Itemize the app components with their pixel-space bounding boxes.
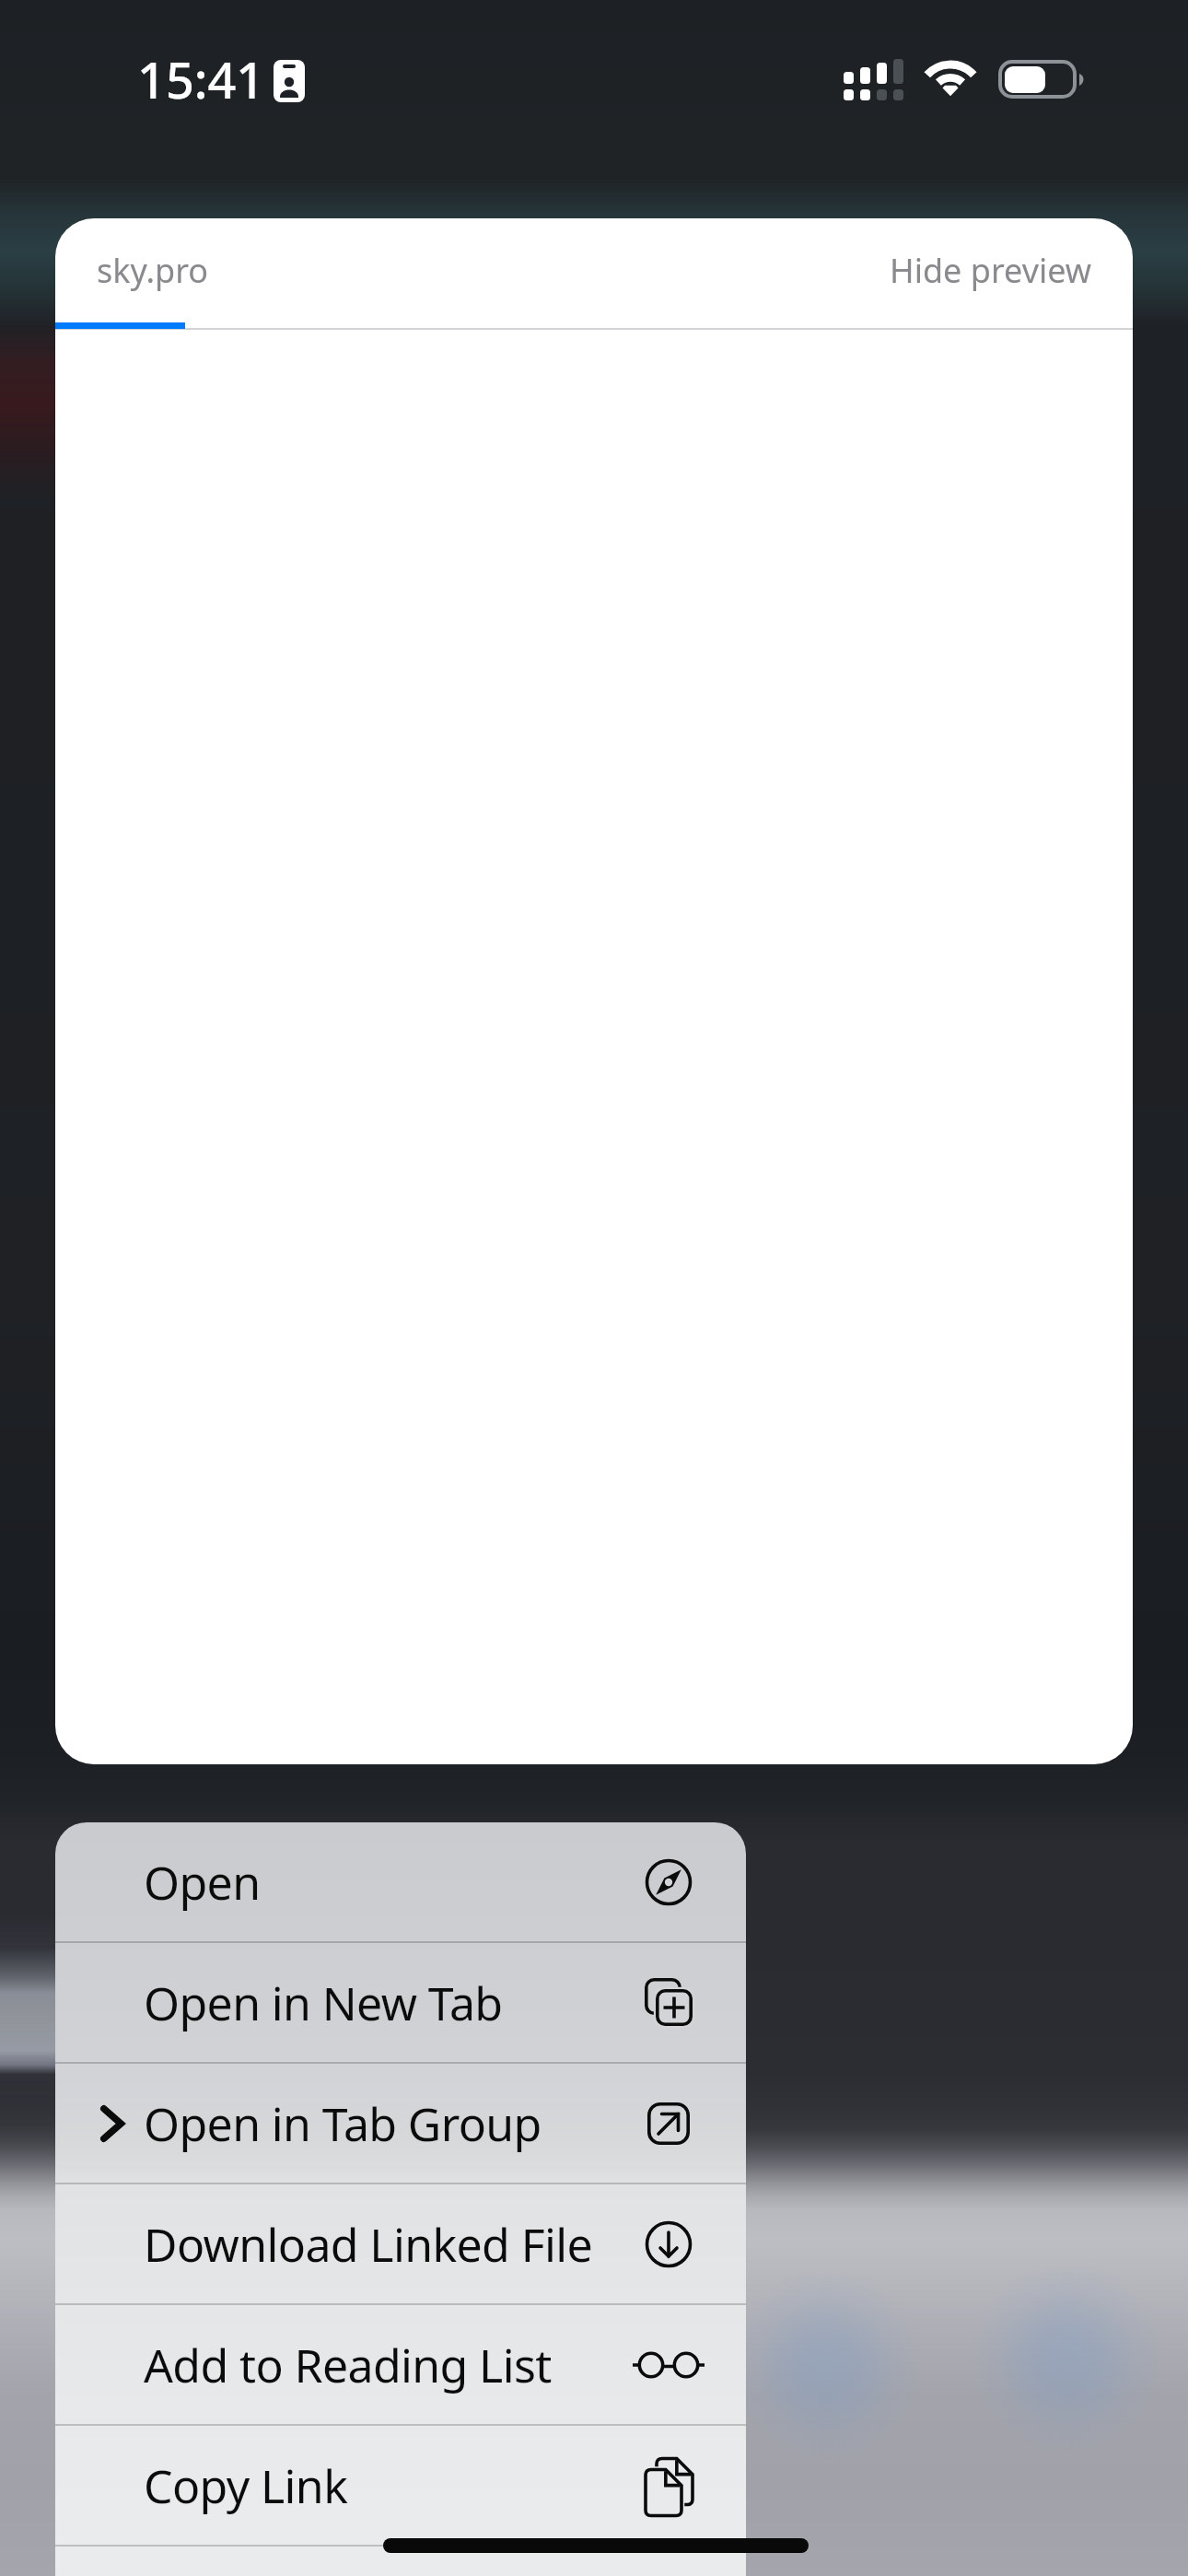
button[interactable]: Share [55, 2547, 746, 2576]
staticText: Download Linked File [144, 2213, 593, 2276]
button[interactable]: Open in New Tab [55, 1943, 746, 2062]
staticText: Add to Reading List [144, 2334, 552, 2396]
button[interactable]: Add to Reading List [55, 2305, 746, 2424]
staticText: Open [144, 1851, 261, 1914]
button[interactable]: Open [55, 1822, 746, 1941]
button[interactable]: Open in Tab Group [55, 2064, 746, 2183]
staticText: Copy Link [144, 2454, 348, 2517]
staticText: 15:41 [137, 45, 265, 113]
button[interactable]: Hide preview [901, 231, 1133, 310]
staticText: Open in New Tab [144, 1972, 503, 2034]
staticText: Open in Tab Group [144, 2092, 542, 2155]
button[interactable]: Download Linked File [55, 2184, 746, 2303]
other: Personal Hotspot [274, 60, 305, 102]
staticText: Hide preview [890, 248, 1092, 293]
button[interactable]: Copy Link [55, 2426, 746, 2545]
other: Status icons [833, 46, 1101, 101]
staticText: sky.pro [97, 248, 209, 293]
